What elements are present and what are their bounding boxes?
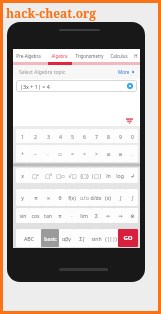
button[interactable]: ∫ <box>114 189 126 206</box>
button[interactable]: GO <box>118 229 138 247</box>
button[interactable]: 8 <box>102 129 114 143</box>
button[interactable]: □³ <box>42 168 54 183</box>
staticText: ▫/▫ <box>80 194 89 201</box>
button[interactable]: π <box>54 208 66 223</box>
button[interactable]: cos <box>29 208 42 223</box>
button[interactable]: 3 <box>42 129 54 143</box>
staticText: ABC <box>24 235 34 242</box>
button[interactable]: Σ∫ <box>74 229 89 247</box>
staticText: 1 <box>21 133 24 140</box>
button[interactable]: 9 <box>114 129 126 143</box>
button[interactable]: Trigonometry <box>74 49 104 62</box>
button[interactable]: sinh <box>89 229 103 247</box>
button[interactable]: ∫ <box>126 189 138 206</box>
staticText: (x) <box>105 194 111 201</box>
button[interactable]: 7 <box>90 129 102 143</box>
button[interactable]: Σ <box>90 208 102 223</box>
staticText: y <box>21 194 24 201</box>
button[interactable]: tan <box>42 208 54 223</box>
button[interactable]: ∞ <box>42 189 54 206</box>
staticText: = <box>71 150 74 157</box>
button[interactable]: |3x + 1| = 4 <box>16 80 137 92</box>
button[interactable]: H <box>131 49 140 62</box>
button[interactable]: < <box>78 145 90 162</box>
button[interactable]: log <box>114 168 126 183</box>
button[interactable]: 2 <box>29 129 42 143</box>
staticText: lim <box>80 212 88 219</box>
button[interactable]: ▫/▫ <box>78 189 90 206</box>
staticText: More <box>118 69 130 75</box>
button[interactable]: 5 <box>66 129 78 143</box>
button[interactable]: lim <box>78 208 90 223</box>
button[interactable]: More <box>118 69 135 75</box>
staticText: + <box>21 150 24 157</box>
button[interactable]: (□) <box>78 168 90 183</box>
staticText: ⇒ <box>118 213 123 219</box>
button[interactable]: d/dx <box>90 189 102 206</box>
staticText: hack-cheat.org <box>6 5 97 21</box>
button[interactable]: sin <box>16 208 29 223</box>
staticText: Σ∫ <box>79 235 85 242</box>
staticText: (□) <box>80 172 89 179</box>
button[interactable]: · <box>66 208 78 223</box>
button[interactable]: > <box>90 145 102 162</box>
button[interactable]: ln <box>102 168 114 183</box>
staticText: ⇐ <box>106 213 111 219</box>
staticText: √□ <box>68 173 77 179</box>
staticText: Trigonometry <box>75 53 104 59</box>
staticText: 2 <box>34 133 37 140</box>
button[interactable]: ≤ <box>102 145 114 162</box>
button[interactable]: 6 <box>78 129 90 143</box>
staticText: GO <box>123 234 133 242</box>
staticText: cos <box>31 212 40 219</box>
button[interactable]: □² <box>29 168 42 183</box>
button[interactable]: θ <box>54 189 66 206</box>
button[interactable]: x <box>16 168 29 183</box>
button[interactable]: f(x) <box>66 189 78 206</box>
staticText: 3 <box>47 133 50 140</box>
button[interactable]: αβγ <box>59 229 74 247</box>
staticText: |3x + 1| = 4 <box>20 83 50 90</box>
button[interactable]: Calculus <box>104 49 134 62</box>
button[interactable]: |□| <box>90 168 102 183</box>
button[interactable]: (x) <box>102 189 114 206</box>
button[interactable]: ⊗ <box>126 208 138 223</box>
staticText: f(x) <box>68 194 76 201</box>
staticText: αβγ <box>62 235 71 242</box>
button[interactable]: basic <box>41 229 59 247</box>
button[interactable]: ↲ <box>126 168 138 183</box>
staticText: 8 <box>107 133 110 140</box>
button[interactable]: 1 <box>16 129 29 143</box>
button[interactable]: ▫ <box>54 145 66 162</box>
button[interactable]: ≥ <box>114 145 126 162</box>
button[interactable]: 0 <box>126 129 138 143</box>
staticText: 4 <box>59 133 62 140</box>
button[interactable]: Algebra <box>44 49 74 62</box>
staticText: sin <box>19 212 27 219</box>
button[interactable]: Hide keyboard <box>121 116 137 126</box>
button[interactable]: □▫ <box>54 168 66 183</box>
button[interactable]: − <box>29 145 42 162</box>
button[interactable]: Pre-Algebra <box>13 49 44 62</box>
button[interactable]: ⇐ <box>102 208 114 223</box>
staticText: ∞ <box>46 195 51 201</box>
staticText: log <box>116 172 124 179</box>
button[interactable]: + <box>16 145 29 162</box>
staticText: > <box>95 150 98 157</box>
staticText: basic <box>44 235 57 242</box>
button[interactable]: 4 <box>54 129 66 143</box>
staticText: 9 <box>119 133 122 140</box>
button[interactable]: ⇒ <box>114 208 126 223</box>
button[interactable]: √□ <box>66 168 78 183</box>
staticText: π <box>34 194 38 201</box>
button[interactable]: Clear <box>127 83 133 89</box>
button[interactable]: (|||) <box>103 229 118 247</box>
button[interactable]: = <box>66 145 78 162</box>
staticText: < <box>83 150 86 157</box>
button[interactable]: y <box>16 189 29 206</box>
button[interactable]: π <box>29 189 42 206</box>
button[interactable]: ABC <box>16 229 41 247</box>
staticText: (|||) <box>105 235 117 242</box>
